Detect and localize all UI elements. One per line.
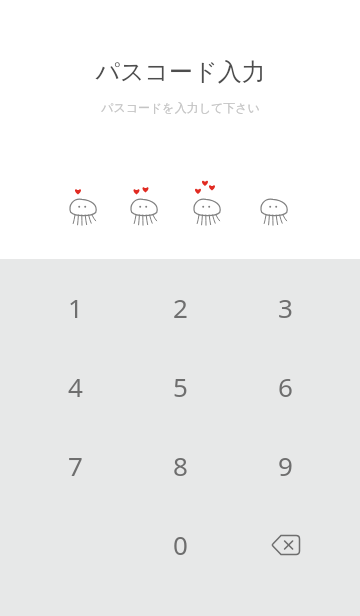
staticText: パスコードを入力して下さい	[101, 100, 260, 115]
staticText: 9	[278, 448, 293, 483]
staticText: 4	[68, 369, 83, 404]
staticText: 8	[173, 448, 188, 483]
button[interactable]: 3	[211, 267, 360, 347]
button[interactable]: 5	[150, 347, 211, 426]
staticText: 5	[173, 369, 188, 404]
staticText: 7	[68, 448, 83, 483]
button[interactable]: 0	[150, 505, 211, 584]
staticText: 2	[173, 290, 188, 325]
button[interactable]: 7	[0, 426, 150, 505]
button[interactable]: 1	[0, 267, 150, 347]
button[interactable]: Backspace	[211, 505, 360, 584]
staticText: 6	[278, 369, 293, 404]
staticText: 0	[173, 527, 188, 562]
button[interactable]: 9	[211, 426, 360, 505]
button[interactable]: 8	[150, 426, 211, 505]
button[interactable]: 4	[0, 347, 150, 426]
button[interactable]: 2	[150, 267, 211, 347]
button[interactable]: 6	[211, 347, 360, 426]
staticText: 1	[68, 290, 83, 325]
staticText: パスコード入力	[95, 57, 266, 87]
staticText: 3	[278, 290, 293, 325]
